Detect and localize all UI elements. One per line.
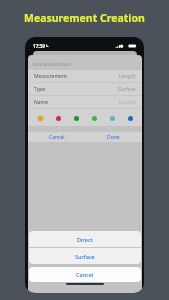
button[interactable]: Cancel xyxy=(28,132,85,142)
staticText: Direct xyxy=(77,236,93,243)
staticText: Cancel xyxy=(76,271,94,278)
button[interactable] xyxy=(53,113,63,123)
button[interactable]: Name xyxy=(28,96,142,108)
button[interactable] xyxy=(125,113,135,123)
staticText: Length xyxy=(119,73,136,80)
staticText: Measurement Creation xyxy=(24,11,145,25)
button[interactable]: Measurement xyxy=(28,70,142,82)
button[interactable]: Cancel xyxy=(29,267,141,282)
button[interactable]: Done xyxy=(85,132,142,142)
staticText: Surface xyxy=(118,86,136,93)
staticText: 17:39 xyxy=(33,43,45,49)
button[interactable]: Type xyxy=(28,83,142,95)
staticText: Name xyxy=(34,99,49,106)
button[interactable]: Surface xyxy=(29,248,141,264)
button[interactable] xyxy=(107,113,117,123)
staticText: Type xyxy=(34,86,46,93)
staticText: Measurement xyxy=(34,73,67,80)
staticText: NEW MEASUREMENT xyxy=(33,62,72,67)
button[interactable] xyxy=(35,113,45,123)
button[interactable] xyxy=(89,113,99,123)
staticText: Surface xyxy=(75,253,95,260)
staticText: Done xyxy=(107,134,120,141)
staticText: Cancel xyxy=(49,134,65,141)
staticText: Length xyxy=(119,99,136,106)
button[interactable] xyxy=(71,113,81,123)
button[interactable]: Direct xyxy=(29,231,141,247)
